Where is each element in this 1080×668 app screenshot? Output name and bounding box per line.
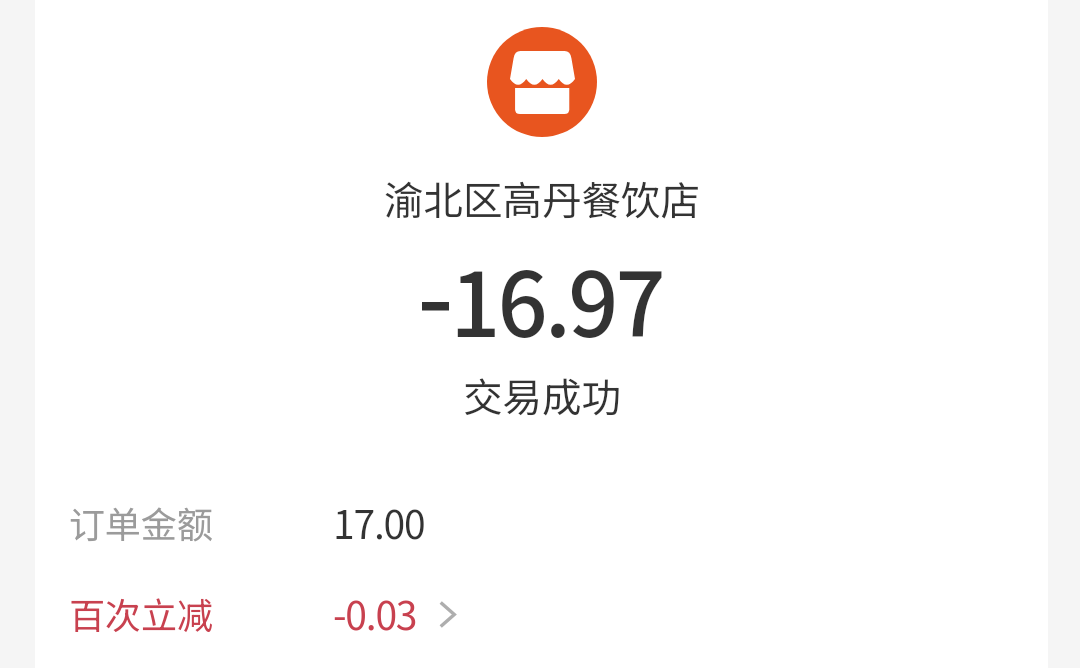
staticText: 17.00 bbox=[333, 494, 425, 550]
staticText: 交易成功 bbox=[463, 366, 621, 423]
button[interactable]: 百次立减 bbox=[35, 567, 1048, 658]
staticText: 订单金额 bbox=[69, 496, 214, 548]
button[interactable]: 订单金额 bbox=[35, 476, 1048, 567]
staticText: 16.97 bbox=[450, 235, 663, 362]
staticText: -0.03 bbox=[333, 585, 417, 641]
staticText: 百次立减 bbox=[69, 587, 214, 639]
staticText: 渝北区高丹餐饮店 bbox=[384, 169, 700, 226]
button[interactable]: Merchant avatar bbox=[487, 27, 597, 137]
